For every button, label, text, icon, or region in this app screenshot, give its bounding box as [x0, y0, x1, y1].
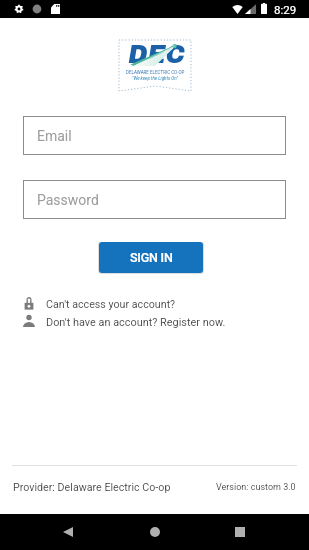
button[interactable]: Home — [128, 514, 182, 550]
button[interactable]: SIGN IN — [99, 242, 203, 273]
staticText: Don't have an account? Register now. — [46, 316, 226, 329]
staticText: DELAWARE ELECTRIC CO-OP — [126, 70, 185, 75]
staticText: DEC — [128, 41, 185, 68]
staticText: Provider: Delaware Electric Co-op — [13, 481, 171, 494]
staticText: Can't access your account? — [46, 298, 176, 311]
button[interactable]: Password — [23, 180, 286, 219]
button[interactable]: Don't have an account? Register now. — [23, 312, 226, 330]
staticText: SIGN IN — [130, 250, 173, 265]
staticText: Version: custom 3.0 — [216, 482, 296, 493]
button[interactable]: Email — [23, 116, 286, 155]
button[interactable]: Can't access your account? — [24, 294, 176, 312]
staticText: Password — [37, 192, 99, 208]
staticText: "We keep the Lights On" — [132, 76, 178, 81]
button[interactable]: Recent apps — [213, 514, 267, 550]
staticText: 8:29 — [274, 3, 297, 16]
button[interactable]: Back — [42, 514, 96, 550]
staticText: Email — [37, 128, 72, 144]
